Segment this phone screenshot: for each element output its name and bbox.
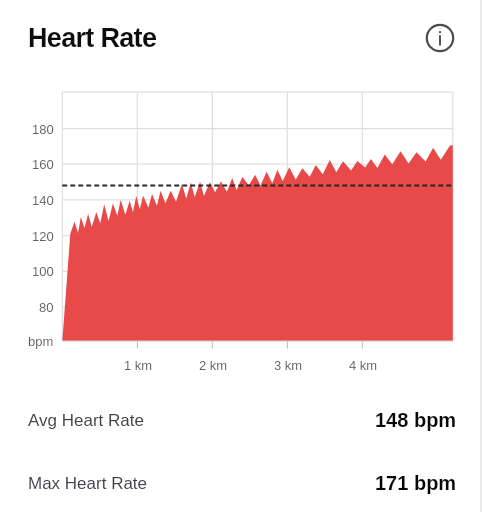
staticText: 160 (32, 157, 54, 172)
staticText: 80 (39, 300, 54, 315)
staticText: 3 km (274, 358, 303, 373)
staticText: Avg Heart Rate (28, 411, 144, 430)
staticText: 120 (32, 229, 54, 244)
staticText: 2 km (199, 358, 228, 373)
staticText: bpm (28, 334, 54, 349)
button[interactable]: Avg Heart Rate (0, 392, 482, 448)
staticText: 171 bpm (375, 472, 457, 494)
button[interactable]: Information (418, 16, 462, 60)
button[interactable]: Max Heart Rate (0, 455, 482, 511)
staticText: 148 bpm (375, 409, 457, 431)
staticText: 180 (32, 122, 54, 137)
staticText: Heart Rate (28, 23, 157, 53)
staticText: 1 km (124, 358, 153, 373)
staticText: Max Heart Rate (28, 474, 148, 493)
staticText: 4 km (349, 358, 378, 373)
staticText: 140 (32, 193, 54, 208)
staticText: 100 (32, 264, 54, 279)
